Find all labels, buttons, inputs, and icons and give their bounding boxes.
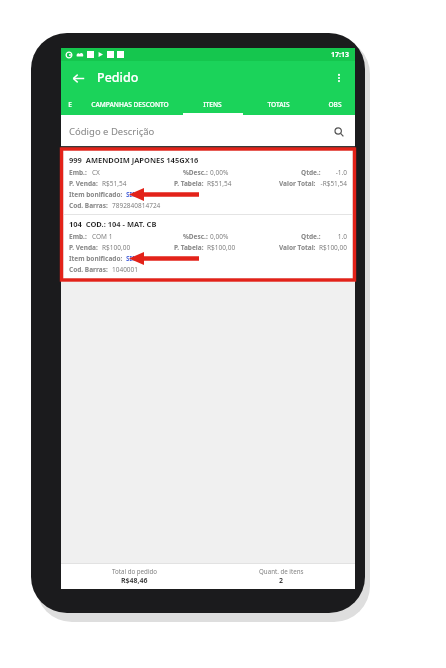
staticText: R$100,00 [102,243,174,252]
staticText: 2 [279,576,284,586]
button[interactable]: ITENS [181,94,243,115]
staticText: CAMPANHAS DESCONTO [91,100,169,109]
staticText: OBS [328,100,342,109]
staticText: Item bonificado: [69,254,123,263]
staticText: R$51,54 [102,179,174,188]
staticText: R$100,00 [317,243,347,252]
staticText: Cod. Barras: [69,201,108,210]
staticText: 104 COD.: 104 - MAT. CB [69,219,157,229]
staticText: P. Tabela: [174,243,207,252]
staticText: R$51,54 [207,179,279,188]
staticText: Valor Total: [279,243,317,252]
button[interactable]: TOTAIS [243,94,314,115]
staticText: 7892840814724 [112,201,161,210]
button[interactable]: E [61,94,78,115]
staticText: SIM [126,190,139,199]
staticText: Valor Total: [279,179,317,188]
staticText: TOTAIS [267,100,290,109]
staticText: -1.0 [323,168,347,177]
staticText: R$48,46 [121,576,148,586]
button[interactable]: 999 AMENDOIM JAPONES 145GX16 [64,151,352,214]
staticText: COM 1 [92,232,183,241]
button[interactable]: CAMPANHAS DESCONTO [78,94,181,115]
staticText: 1040001 [112,265,139,274]
staticText: SIM [126,254,139,263]
staticText: Qtde.: [301,168,323,177]
staticText: Emb.: [69,232,92,241]
staticText: Item bonificado: [69,190,123,199]
button[interactable]: 104 COD.: 104 - MAT. CB [64,215,352,278]
staticText: R$100,00 [207,243,279,252]
staticText: %Desc.: [183,168,210,177]
staticText: 1.0 [323,232,347,241]
staticText: CX [92,168,183,177]
button[interactable]: OBS [314,94,355,115]
staticText: 0,00% [210,168,301,177]
button[interactable]: More options [327,66,351,90]
button[interactable]: Back [66,66,90,90]
staticText: Emb.: [69,168,92,177]
staticText: Código e Descrição [69,125,155,138]
staticText: %Desc.: [183,232,210,241]
staticText: 999 AMENDOIM JAPONES 145GX16 [69,155,199,165]
staticText: Total do pedido [112,567,158,575]
staticText: Cod. Barras: [69,265,108,274]
button[interactable]: Código e Descrição [61,115,355,148]
staticText: Pedido [97,69,139,86]
staticText: P. Venda: [69,243,102,252]
staticText: Quant. de itens [259,567,304,575]
staticText: P. Tabela: [174,179,207,188]
button[interactable]: Total do pedido [61,563,208,589]
staticText: 17:13 [331,50,349,60]
staticText: Qtde.: [301,232,323,241]
staticText: P. Venda: [69,179,102,188]
button[interactable]: Search [330,123,348,141]
staticText: ITENS [203,100,222,109]
button[interactable]: Quant. de itens [208,563,355,589]
staticText: 0,00% [210,232,301,241]
staticText: E [68,100,72,109]
staticText: -R$51,54 [317,179,347,188]
